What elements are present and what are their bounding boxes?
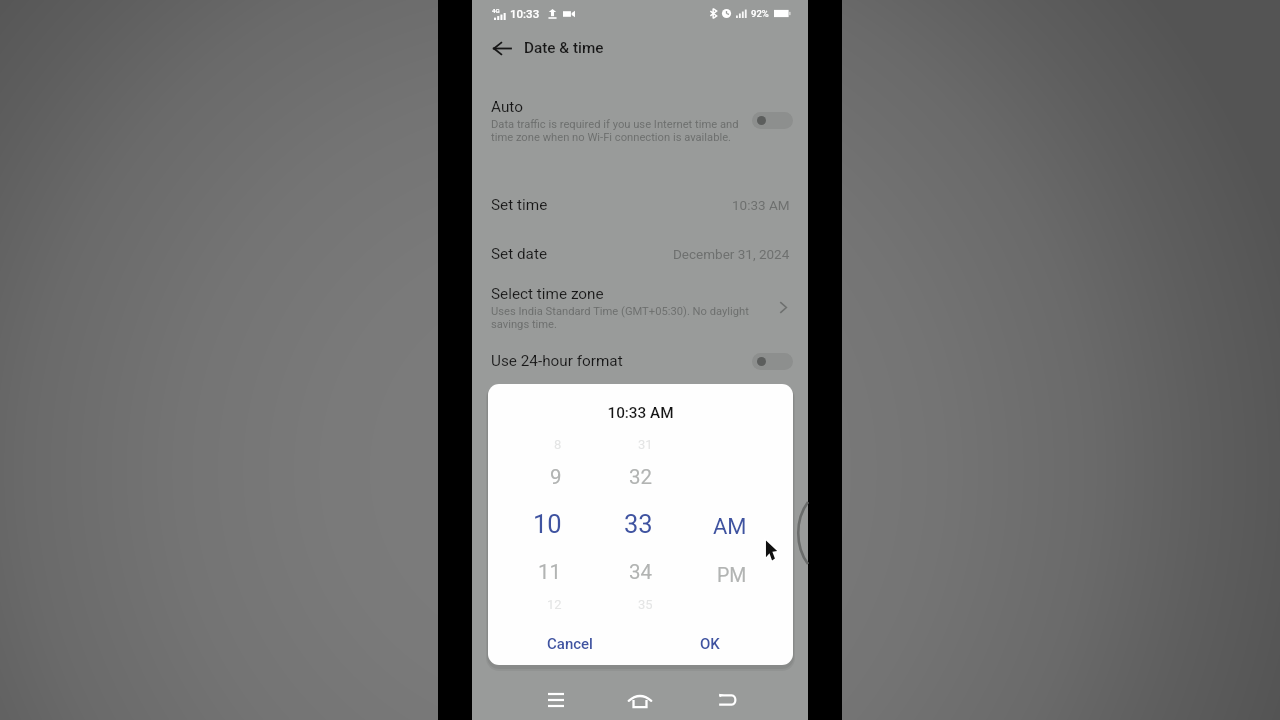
staticText: 10:33 AM: [488, 404, 793, 422]
staticText: 34: [629, 560, 653, 584]
button[interactable]: AM: [657, 509, 747, 545]
button[interactable]: Cancel: [525, 627, 615, 661]
staticText: PM: [717, 564, 747, 587]
staticText: Date & time: [524, 39, 604, 57]
button[interactable]: Recent apps: [534, 678, 578, 720]
staticText: 33: [624, 509, 653, 539]
staticText: Select time zone: [491, 285, 604, 303]
staticText: Use 24-hour format: [491, 352, 623, 370]
button[interactable]: Toggle off: [752, 353, 793, 370]
button[interactable]: 32: [563, 459, 653, 495]
button[interactable]: Set time: [472, 192, 808, 218]
button[interactable]: Set date: [472, 241, 808, 267]
staticText: Data traffic is required if you use Inte…: [491, 118, 753, 144]
button[interactable]: Use 24-hour format: [472, 349, 808, 377]
button[interactable]: Navigate up: [479, 26, 524, 70]
staticText: 10:33 AM: [732, 197, 790, 213]
staticText: 32: [629, 465, 653, 489]
button[interactable]: 9: [488, 459, 562, 495]
button[interactable]: 10: [488, 506, 562, 542]
staticText: 12: [547, 597, 562, 612]
button[interactable]: OK: [665, 627, 755, 661]
staticText: 35: [638, 597, 653, 612]
button[interactable]: 11: [488, 554, 562, 590]
button[interactable]: 33: [563, 506, 653, 542]
button[interactable]: Back: [705, 678, 749, 720]
staticText: 10:33: [510, 7, 540, 20]
staticText: December 31, 2024: [673, 246, 790, 262]
button[interactable]: Home: [618, 678, 662, 720]
staticText: 92%: [751, 8, 769, 19]
staticText: Auto: [491, 98, 523, 116]
staticText: 8: [554, 437, 562, 452]
button[interactable]: PM: [657, 557, 747, 593]
staticText: 9: [550, 465, 562, 489]
staticText: Uses India Standard Time (GMT+05:30). No…: [491, 305, 757, 331]
staticText: AM: [713, 514, 747, 540]
button[interactable]: Auto: [472, 94, 808, 148]
staticText: 31: [638, 437, 653, 452]
button[interactable]: Select time zone: [472, 281, 808, 333]
button[interactable]: 34: [563, 554, 653, 590]
staticText: Cancel: [547, 635, 593, 653]
staticText: 4G: [492, 7, 500, 14]
button[interactable]: Toggle off: [752, 112, 793, 129]
staticText: OK: [700, 635, 720, 653]
staticText: 11: [538, 560, 562, 584]
staticText: Set date: [491, 245, 548, 263]
staticText: 10: [533, 509, 562, 539]
staticText: Set time: [491, 196, 548, 214]
